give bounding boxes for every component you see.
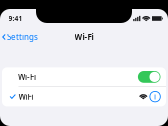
staticText: Wi-Fi — [18, 72, 36, 82]
staticText: 9:41 — [9, 14, 23, 23]
staticText: i — [154, 91, 156, 102]
button[interactable]: Settings — [0, 29, 41, 45]
staticText: WiFi — [18, 91, 33, 102]
button[interactable]: WiFi — [2, 87, 166, 106]
staticText: Settings — [7, 32, 38, 42]
button[interactable]: Wi-Fi — [2, 67, 166, 86]
staticText: Wi-Fi — [74, 32, 93, 42]
